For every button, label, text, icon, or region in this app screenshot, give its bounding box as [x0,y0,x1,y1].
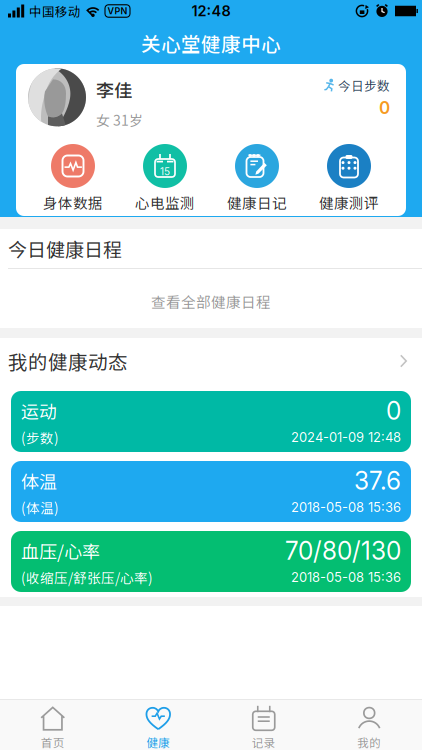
staticText: 今日步数 [338,76,390,94]
staticText: 健康日记 [227,192,287,213]
staticText: 2018-05-08 15:36 [291,499,401,515]
staticText: (步数) [21,427,59,447]
staticText: 0 [379,97,390,118]
staticText: 2018-05-08 15:36 [291,569,401,585]
staticText: 女 31岁 [96,109,143,130]
button[interactable]: 健康测评 [303,144,395,213]
staticText: (体温) [21,497,59,517]
staticText: 2024-01-09 12:48 [291,429,401,445]
button[interactable]: 首页 [0,706,105,750]
staticText: 12:48 [191,2,230,20]
staticText: 查看全部健康日程 [151,291,271,312]
staticText: 体温 [21,468,57,494]
staticText: 记录 [252,734,276,750]
button[interactable]: 血压/心率 [0,531,422,592]
staticText: 15 [160,165,170,178]
staticText: 健康测评 [319,192,379,213]
button[interactable]: 身体数据 [27,144,119,213]
button[interactable]: 15 [119,144,211,213]
staticText: 今日健康日程 [8,235,122,262]
staticText: 身体数据 [43,192,103,213]
staticText: 0 [386,396,401,425]
staticText: 关心堂健康中心 [141,29,281,57]
staticText: 运动 [21,398,57,424]
staticText: 心电监测 [135,192,195,213]
staticText: 我的健康动态 [8,347,128,375]
button[interactable]: 体温 [0,461,422,522]
button[interactable]: 健康 [105,706,211,750]
button[interactable]: 我的健康动态 [0,338,422,384]
staticText: VPN [107,6,127,16]
staticText: 37.6 [354,466,401,495]
button[interactable]: 我的 [316,706,422,750]
button[interactable]: 运动 [0,391,422,452]
staticText: 李佳 [96,76,132,102]
staticText: 中国移动 [29,2,81,20]
staticText: (收缩压/舒张压/心率) [21,567,153,587]
staticText: 健康 [146,734,170,750]
staticText: 我的 [357,734,381,750]
button[interactable]: 健康日记 [211,144,303,213]
staticText: 首页 [41,734,65,750]
staticText: 血压/心率 [21,538,100,564]
staticText: 70/80/130 [285,536,401,565]
button[interactable]: 查看全部健康日程 [151,291,271,312]
button[interactable]: 记录 [211,706,316,750]
